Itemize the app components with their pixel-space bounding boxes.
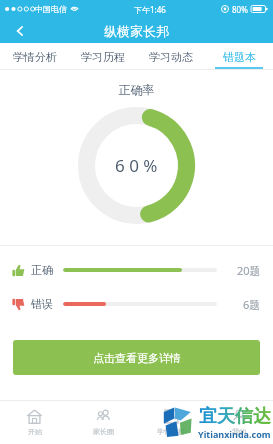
button[interactable]: 错误 [12, 294, 261, 314]
staticText: 学习动态 [149, 50, 193, 64]
button[interactable]: 学情分析 [0, 43, 69, 70]
staticText: 80% [232, 4, 248, 15]
staticText: 正确 [31, 263, 53, 277]
staticText: 错误 [31, 297, 53, 311]
staticText: Yitianxinda.com [198, 428, 271, 440]
staticText: 学情分析 [157, 427, 185, 436]
button[interactable]: 我的 [205, 400, 273, 444]
button[interactable]: Back [0, 18, 40, 43]
button[interactable]: 学习动态 [137, 43, 205, 70]
staticText: 我的 [232, 427, 246, 436]
button[interactable]: 学习历程 [69, 43, 137, 70]
staticText: 学习历程 [81, 50, 125, 64]
staticText: 开始 [28, 427, 42, 436]
button[interactable]: 正确 [12, 260, 261, 280]
staticText: 宜天信达 [199, 405, 271, 428]
staticText: 家长圈 [93, 427, 114, 436]
staticText: 学情分析 [13, 50, 57, 64]
staticText: 正确率 [0, 82, 273, 97]
staticText: 中国电信 [35, 4, 67, 14]
staticText: 错题本 [223, 50, 256, 64]
staticText: 下午1:46 [134, 4, 166, 15]
staticText: 6 0 % [115, 154, 158, 177]
button[interactable]: 点击查看更多详情 [13, 340, 260, 375]
button[interactable]: 错题本 [205, 43, 273, 70]
button[interactable]: 家长圈 [69, 400, 137, 444]
button[interactable]: 学情分析 [137, 400, 205, 444]
staticText: 纵横家长邦 [104, 23, 169, 39]
staticText: 20题 [237, 263, 261, 278]
staticText: 6题 [243, 297, 261, 312]
staticText: 点击查看更多详情 [93, 351, 181, 365]
button[interactable]: 开始 [0, 400, 69, 444]
